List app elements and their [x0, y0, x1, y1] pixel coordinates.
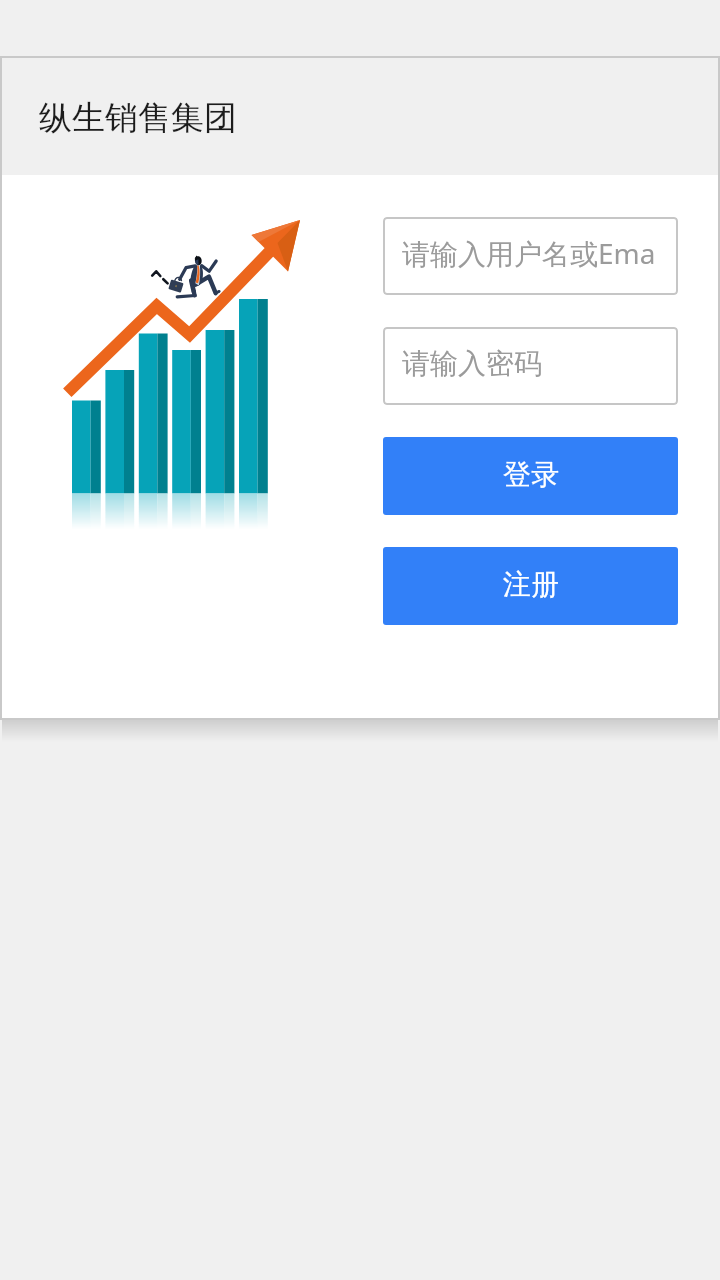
button[interactable]: 注册 — [383, 547, 678, 625]
button[interactable]: 请输入用户名或Ema — [383, 217, 678, 295]
staticText: 纵生销售集团 — [39, 97, 237, 139]
staticText: 请输入用户名或Ema — [402, 234, 656, 272]
staticText: 注册 — [503, 567, 559, 602]
button[interactable]: 请输入密码 — [383, 327, 678, 405]
staticText: 登录 — [503, 457, 559, 492]
staticText: 请输入密码 — [402, 346, 542, 381]
button[interactable]: 登录 — [383, 437, 678, 515]
